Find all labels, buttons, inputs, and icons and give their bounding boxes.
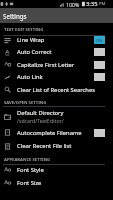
button[interactable]: Clear List of Recent Searches bbox=[0, 83, 113, 96]
staticText: Autocomplete Filename bbox=[17, 129, 82, 137]
staticText: Auto Link bbox=[17, 73, 43, 81]
staticText: Line Wrap bbox=[17, 36, 45, 44]
button[interactable]: Default Directory bbox=[0, 106, 113, 126]
staticText: 3:35 bbox=[86, 0, 98, 8]
staticText: TEXT EDIT SETTING bbox=[4, 27, 44, 33]
button[interactable]: Settings bbox=[0, 8, 113, 23]
staticText: Auto Correct bbox=[17, 48, 52, 56]
staticText: Font Style bbox=[17, 166, 44, 174]
button[interactable]: Auto Correct bbox=[0, 46, 113, 58]
staticText: Clear List of Recent Searches bbox=[17, 86, 96, 94]
staticText: 100% bbox=[66, 1, 80, 8]
staticText: Clear Recent File list bbox=[17, 142, 72, 150]
button[interactable]: Line Wrap bbox=[0, 34, 113, 46]
staticText: /sdcard/TextEditor/ bbox=[17, 117, 64, 124]
staticText: Font Size bbox=[17, 179, 42, 187]
staticText: SAVE/OPEN SETTING bbox=[4, 100, 47, 106]
staticText: ON bbox=[96, 38, 103, 43]
staticText: Capitalize First Letter bbox=[17, 61, 75, 69]
button[interactable]: Switch on bbox=[94, 36, 105, 44]
button[interactable]: Font Size bbox=[0, 176, 113, 189]
button[interactable]: Autocomplete Filename bbox=[0, 126, 113, 139]
staticText: Settings bbox=[3, 12, 27, 20]
staticText: PM bbox=[99, 1, 106, 7]
button[interactable]: Font Style bbox=[0, 163, 113, 176]
staticText: Default Directory bbox=[17, 109, 64, 117]
staticText: APPEARANCE SETTING bbox=[4, 157, 51, 163]
button[interactable]: Capitalize First Letter bbox=[0, 58, 113, 71]
button[interactable]: Auto Link bbox=[0, 71, 113, 83]
button[interactable]: Clear Recent File list bbox=[0, 139, 113, 153]
